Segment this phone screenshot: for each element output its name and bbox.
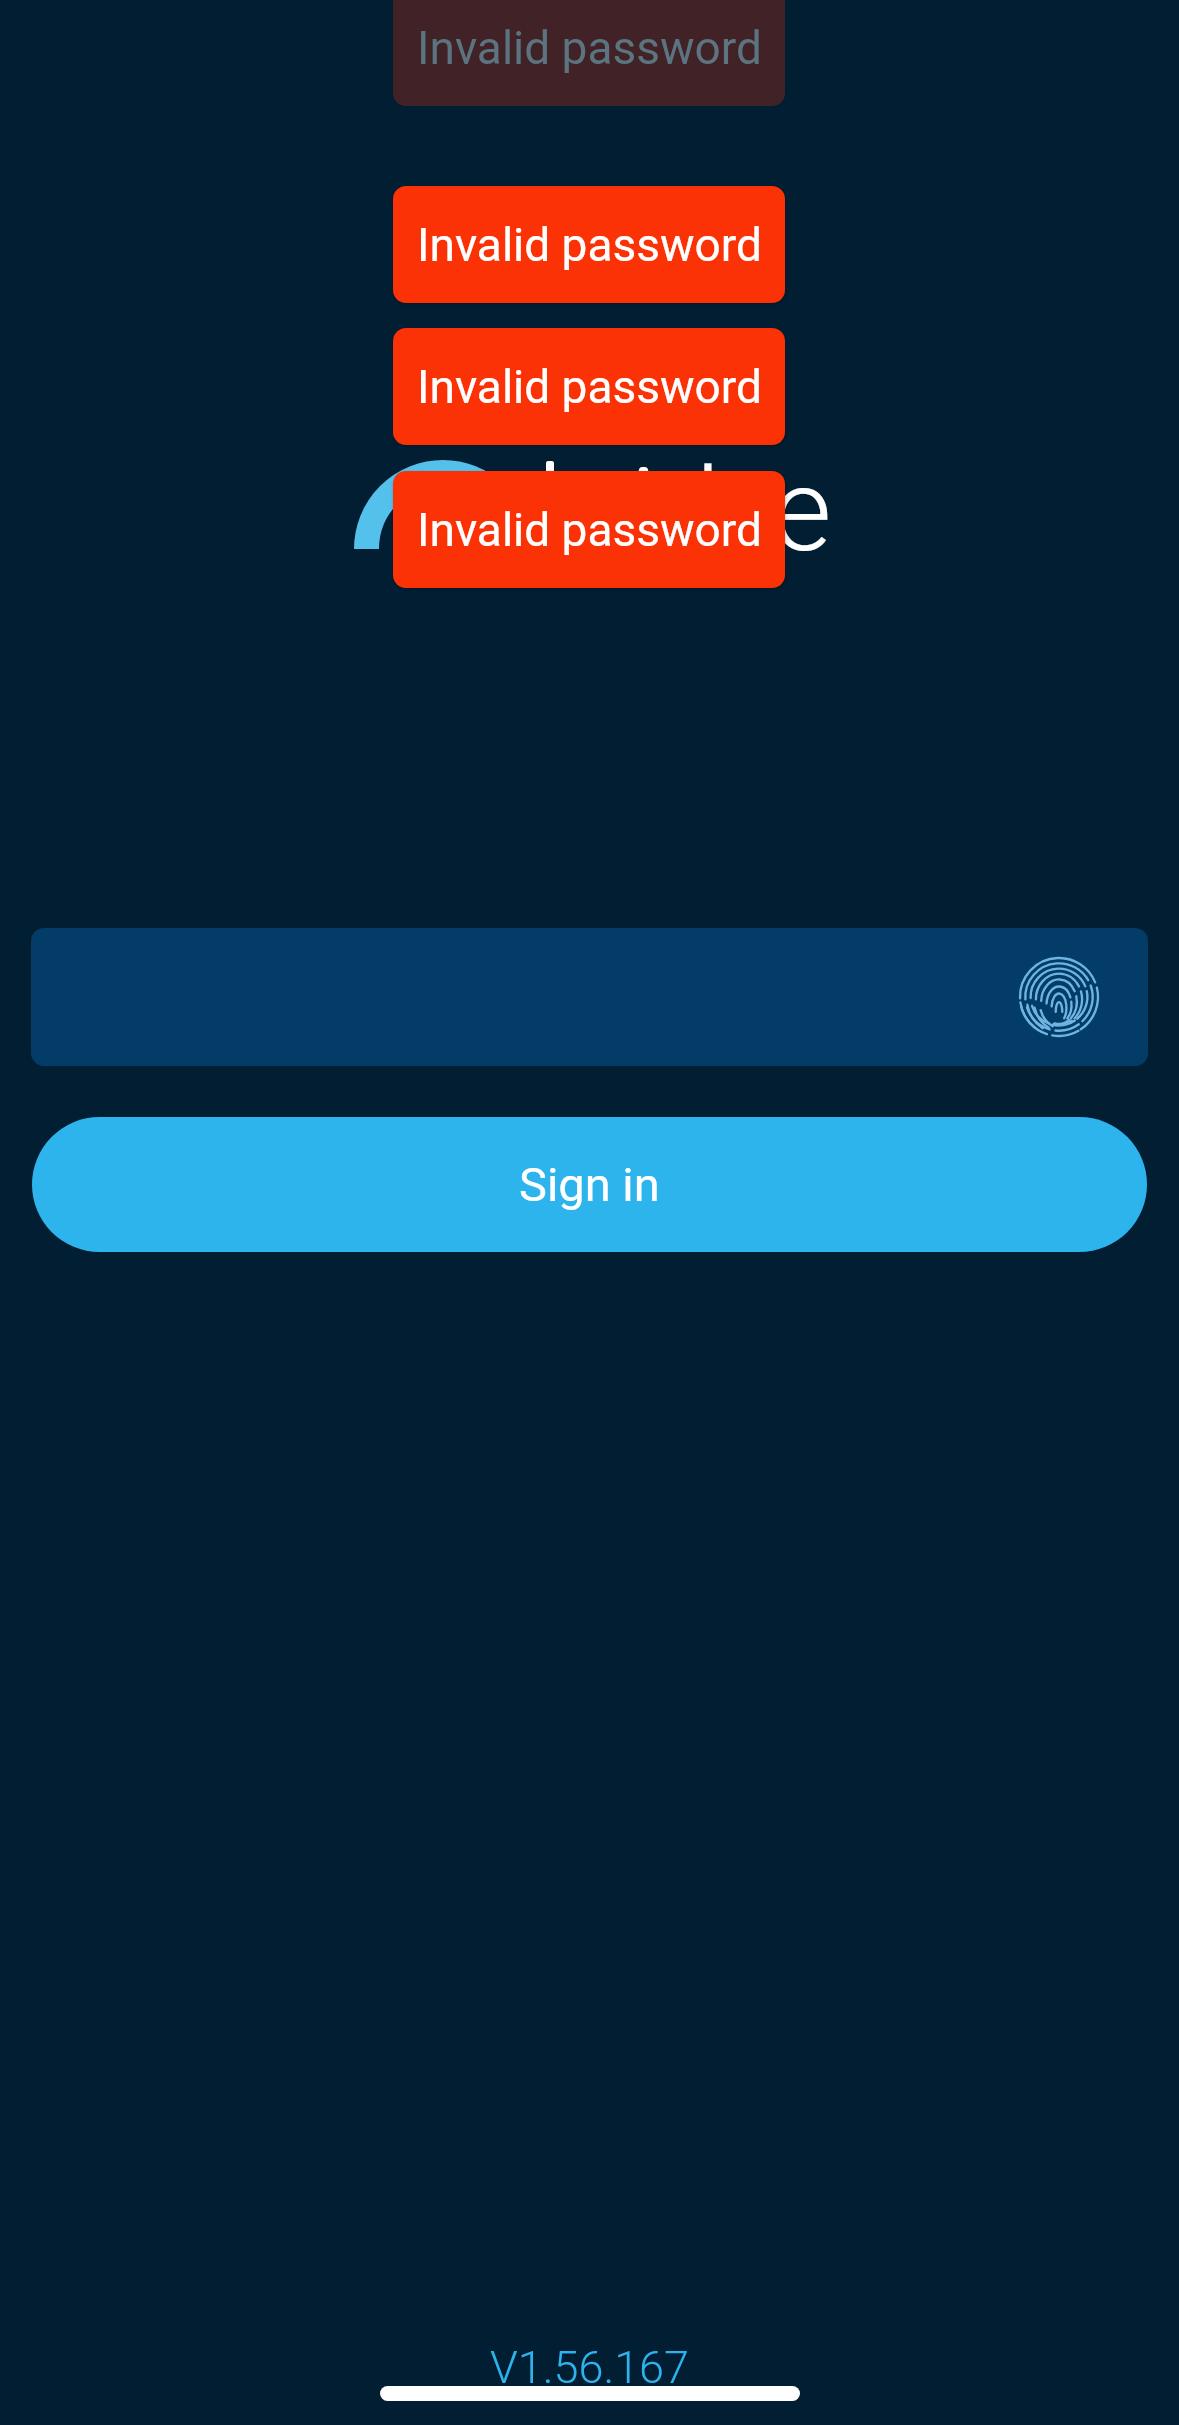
staticText: Invalid password [417,21,762,75]
button[interactable]: Invalid password [393,0,785,106]
staticText: utsid [472,443,721,578]
staticText: Invalid password [417,360,762,414]
button[interactable]: Invalid password [393,328,785,445]
button[interactable]: Invalid password [393,186,785,303]
staticText: Sign in [519,1157,660,1212]
staticText: V1.56.167 [490,2341,690,2394]
button[interactable]: Sign in with fingerprint [1020,958,1098,1036]
other: Outside logo [0,0,1179,2425]
staticText: Invalid password [417,503,762,557]
button[interactable]: Invalid password [393,471,785,588]
staticText: e [772,443,832,578]
button[interactable]: Sign in with fingerprint [31,928,1148,1066]
button[interactable]: Sign in [32,1117,1147,1252]
staticText: Invalid password [417,218,762,272]
